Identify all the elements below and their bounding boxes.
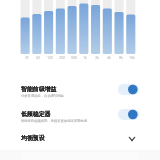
button[interactable]: 均衡预设 [21, 131, 138, 145]
staticText: 低频稳定器 [21, 110, 51, 117]
staticText: 分析音源动态，自动调节增益 [21, 94, 64, 98]
staticText: 2k [89, 56, 105, 60]
staticText: 智能前级增益 [21, 85, 57, 92]
button[interactable]: 低频稳定器 [21, 101, 138, 127]
staticText: 16k [124, 56, 140, 60]
staticText: 均衡预设 [21, 134, 45, 141]
staticText: 低频稳定器 [21, 110, 51, 117]
staticText: 均衡预设 [21, 134, 45, 141]
button[interactable]: 低频稳定器 [118, 109, 139, 120]
staticText: 智能优化低频表现，使低音更加稳定浑厚饱满 [21, 119, 87, 123]
button[interactable]: 智能前级增益 [118, 84, 139, 95]
staticText: 125 [42, 56, 58, 60]
staticText: 低频稳定器 [21, 110, 51, 117]
staticText: 4k [101, 56, 117, 60]
staticText: 1k [77, 56, 93, 60]
staticText: 62 [30, 56, 46, 60]
staticText: 500 [66, 56, 82, 60]
staticText: 智能前级增益 [21, 85, 57, 92]
staticText: 均衡预设 [21, 134, 45, 141]
other: Expand equaliser presets [127, 133, 137, 143]
staticText: 250 [54, 56, 70, 60]
button[interactable]: 智能前级增益 [21, 76, 138, 102]
staticText: 智能前级增益 [21, 85, 57, 92]
staticText: 31 [19, 56, 35, 60]
staticText: 8k [113, 56, 129, 60]
